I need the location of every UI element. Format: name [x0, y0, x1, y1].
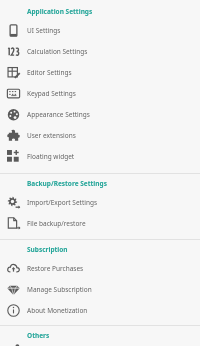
staticText: About Monetization	[27, 306, 88, 315]
staticText: Application Settings	[27, 7, 93, 16]
button[interactable]: User extensions	[0, 125, 200, 146]
button[interactable]: Appearance Settings	[0, 104, 200, 125]
button[interactable]: UI Settings	[0, 20, 200, 41]
staticText: Appearance Settings	[27, 110, 90, 119]
button[interactable]: File backup/restore	[0, 213, 200, 234]
staticText: Restore Purchases	[27, 264, 84, 273]
button[interactable]: Editor Settings	[0, 62, 200, 83]
staticText: Backup/Restore Settings	[27, 179, 107, 188]
staticText: UI Settings	[27, 26, 61, 35]
staticText: Others	[27, 331, 50, 340]
staticText: Editor Settings	[27, 68, 72, 77]
button[interactable]: Keypad Settings	[0, 83, 200, 104]
button[interactable]: Floating widget	[0, 146, 200, 167]
staticText: User extensions	[27, 131, 76, 140]
button[interactable]: Share CalcNote with friends	[0, 344, 200, 346]
staticText: Floating widget	[27, 152, 75, 161]
staticText: Manage Subscription	[27, 285, 92, 294]
staticText: Subscription	[27, 245, 68, 254]
button[interactable]: Import/Export Settings	[0, 192, 200, 213]
staticText: Calculation Settings	[27, 47, 88, 56]
button[interactable]: Manage Subscription	[0, 279, 200, 300]
staticText: Import/Export Settings	[27, 198, 98, 207]
button[interactable]: Restore Purchases	[0, 258, 200, 279]
button[interactable]: Calculation Settings	[0, 41, 200, 62]
staticText: Keypad Settings	[27, 89, 76, 98]
button[interactable]: About Monetization	[0, 300, 200, 321]
staticText: File backup/restore	[27, 219, 86, 228]
